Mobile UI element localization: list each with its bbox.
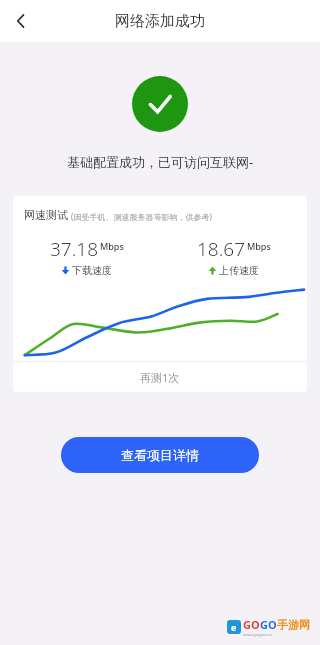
staticText: 18.67	[197, 236, 246, 262]
staticText: www.gogoxz.cn	[243, 632, 273, 637]
staticText: GO	[243, 617, 260, 632]
staticText: GO	[260, 617, 277, 632]
staticText: 查看项目详情	[121, 447, 199, 463]
staticText: Mbps	[100, 240, 124, 252]
button[interactable]: 查看项目详情	[61, 437, 259, 473]
staticText: 网速测试	[24, 208, 68, 222]
staticText: 37.18	[50, 236, 99, 262]
staticText: 再测1次	[140, 370, 180, 385]
staticText: 手游网	[277, 618, 310, 632]
staticText: e	[231, 621, 237, 633]
staticText: 基础配置成功，已可访问互联网-	[0, 153, 320, 171]
staticText: 网络添加成功	[115, 12, 205, 31]
button[interactable]: Back	[0, 0, 42, 42]
staticText: (因受手机、测速服务器等影响，供参考)	[71, 211, 212, 222]
button[interactable]: 再测1次	[13, 362, 307, 392]
staticText: 下载速度	[72, 264, 112, 277]
staticText: 上传速度	[219, 264, 259, 277]
staticText: Mbps	[247, 240, 271, 252]
